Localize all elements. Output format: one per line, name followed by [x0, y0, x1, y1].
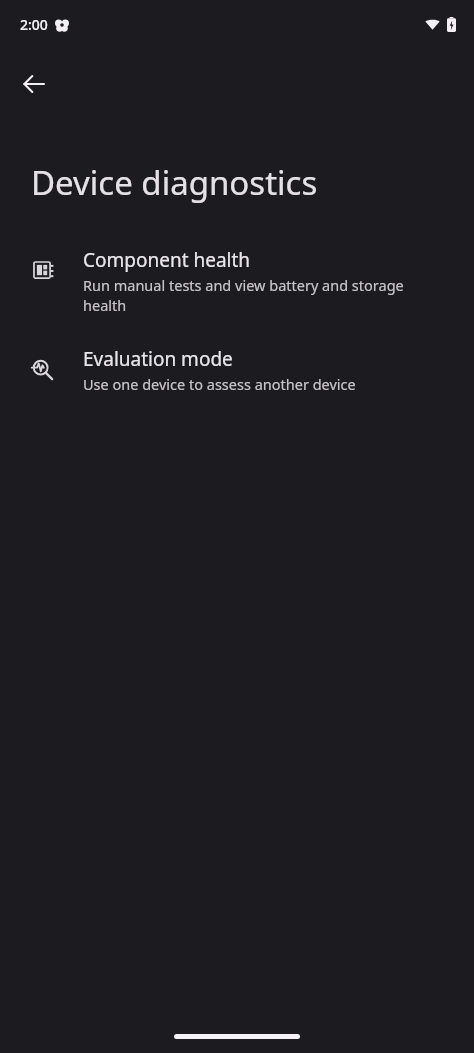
staticText: Evaluation mode — [83, 346, 233, 372]
staticText: Run manual tests and view battery and st… — [83, 275, 438, 316]
staticText: Device diagnostics — [31, 160, 318, 205]
staticText: Component health — [83, 247, 251, 273]
button[interactable]: Component health — [0, 241, 474, 322]
button[interactable]: Back — [10, 60, 58, 108]
staticText: 2:00 — [20, 15, 48, 34]
button[interactable]: Evaluation mode — [0, 340, 474, 400]
staticText: Use one device to assess another device — [83, 374, 356, 394]
